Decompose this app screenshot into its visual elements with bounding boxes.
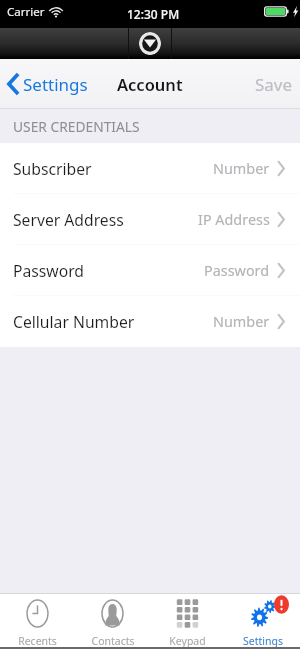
button[interactable]: Cellular Number [0, 296, 300, 347]
staticText: Number [213, 159, 270, 179]
staticText: Password [13, 260, 84, 281]
button[interactable]: Settings [225, 593, 300, 649]
staticText: Settings [243, 634, 283, 648]
staticText: Account [117, 73, 183, 95]
staticText: Server Address [13, 209, 124, 230]
staticText: Recents [18, 634, 57, 648]
staticText: Password [204, 261, 270, 281]
staticText: Carrier [7, 4, 45, 20]
staticText: Number [213, 312, 270, 332]
button[interactable]: Subscriber [0, 143, 300, 194]
staticText: Subscriber [13, 158, 92, 179]
button[interactable]: Settings [7, 59, 88, 109]
button[interactable]: Keypad [150, 593, 225, 649]
staticText: Cellular Number [13, 311, 135, 332]
button[interactable]: Password [0, 245, 300, 296]
staticText: Keypad [169, 634, 206, 648]
button[interactable]: Save [243, 59, 300, 109]
staticText: Settings [23, 73, 88, 96]
staticText: Contacts [91, 634, 135, 648]
staticText: 12:30 PM [127, 6, 180, 22]
staticText: USER CREDENTIALS [13, 117, 140, 136]
button[interactable]: Expand [139, 32, 161, 55]
button[interactable]: Server Address [0, 194, 300, 245]
button[interactable]: Recents [0, 593, 75, 649]
staticText: Save [255, 73, 293, 96]
button[interactable]: Contacts [75, 593, 150, 649]
staticText: IP Address [198, 210, 270, 230]
